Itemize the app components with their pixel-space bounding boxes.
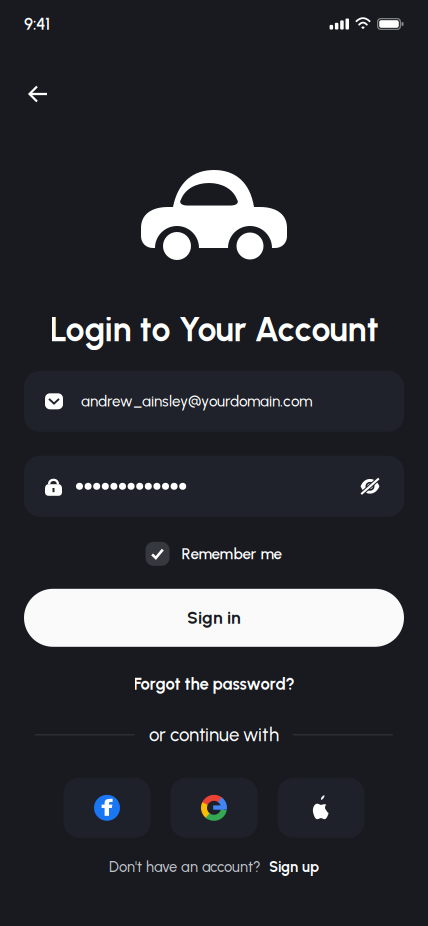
- button[interactable]: Sign in: [24, 589, 404, 647]
- button[interactable]: Sign up: [269, 858, 319, 876]
- staticText: or continue with: [149, 724, 279, 746]
- button[interactable]: Continue with Google: [170, 778, 257, 838]
- button[interactable]: Show password: [357, 473, 383, 499]
- staticText: Sign up: [269, 858, 319, 876]
- button[interactable]: Back: [16, 72, 60, 116]
- button[interactable]: Remember me: [145, 538, 282, 570]
- button[interactable]: Forgot the password?: [133, 669, 294, 699]
- button[interactable]: Continue with Apple: [277, 778, 364, 838]
- staticText: 9:41: [24, 14, 50, 34]
- staticText: Forgot the password?: [133, 674, 294, 694]
- staticText: Login to Your Account: [49, 309, 378, 350]
- button[interactable]: Continue with Facebook: [63, 778, 150, 838]
- staticText: Don't have an account?: [109, 858, 261, 876]
- staticText: Remember me: [181, 545, 282, 563]
- staticText: Sign in: [187, 607, 241, 628]
- staticText: andrew_ainsley@yourdomain.com: [81, 392, 313, 410]
